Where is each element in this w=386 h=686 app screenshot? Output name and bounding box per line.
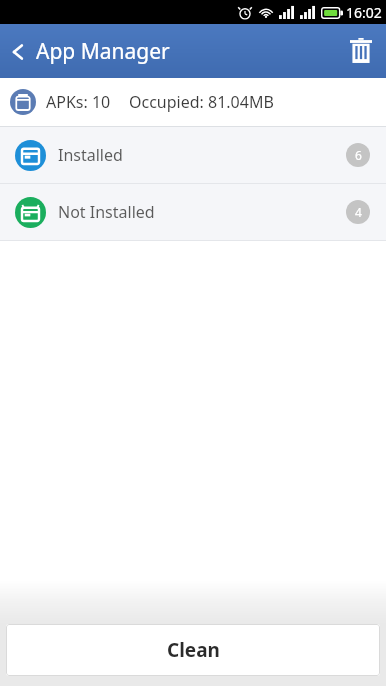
staticText: Not Installed [58, 201, 155, 223]
staticText: Occupied: 81.04MB [129, 91, 274, 113]
button[interactable]: Delete [336, 28, 386, 74]
staticText: App Manager [36, 37, 170, 66]
staticText: Installed [58, 144, 123, 166]
staticText: 4 [355, 204, 362, 220]
staticText: 16:02 [346, 3, 382, 22]
button[interactable]: Installed [0, 127, 386, 183]
staticText: 6 [355, 147, 362, 163]
staticText: APKs: 10 [46, 91, 111, 113]
staticText: Clean [167, 637, 220, 663]
button[interactable]: Not Installed [0, 184, 386, 240]
button[interactable]: Clean [6, 624, 380, 676]
button[interactable]: APKs: 10 [0, 78, 386, 126]
button[interactable]: App Manager [0, 29, 180, 74]
